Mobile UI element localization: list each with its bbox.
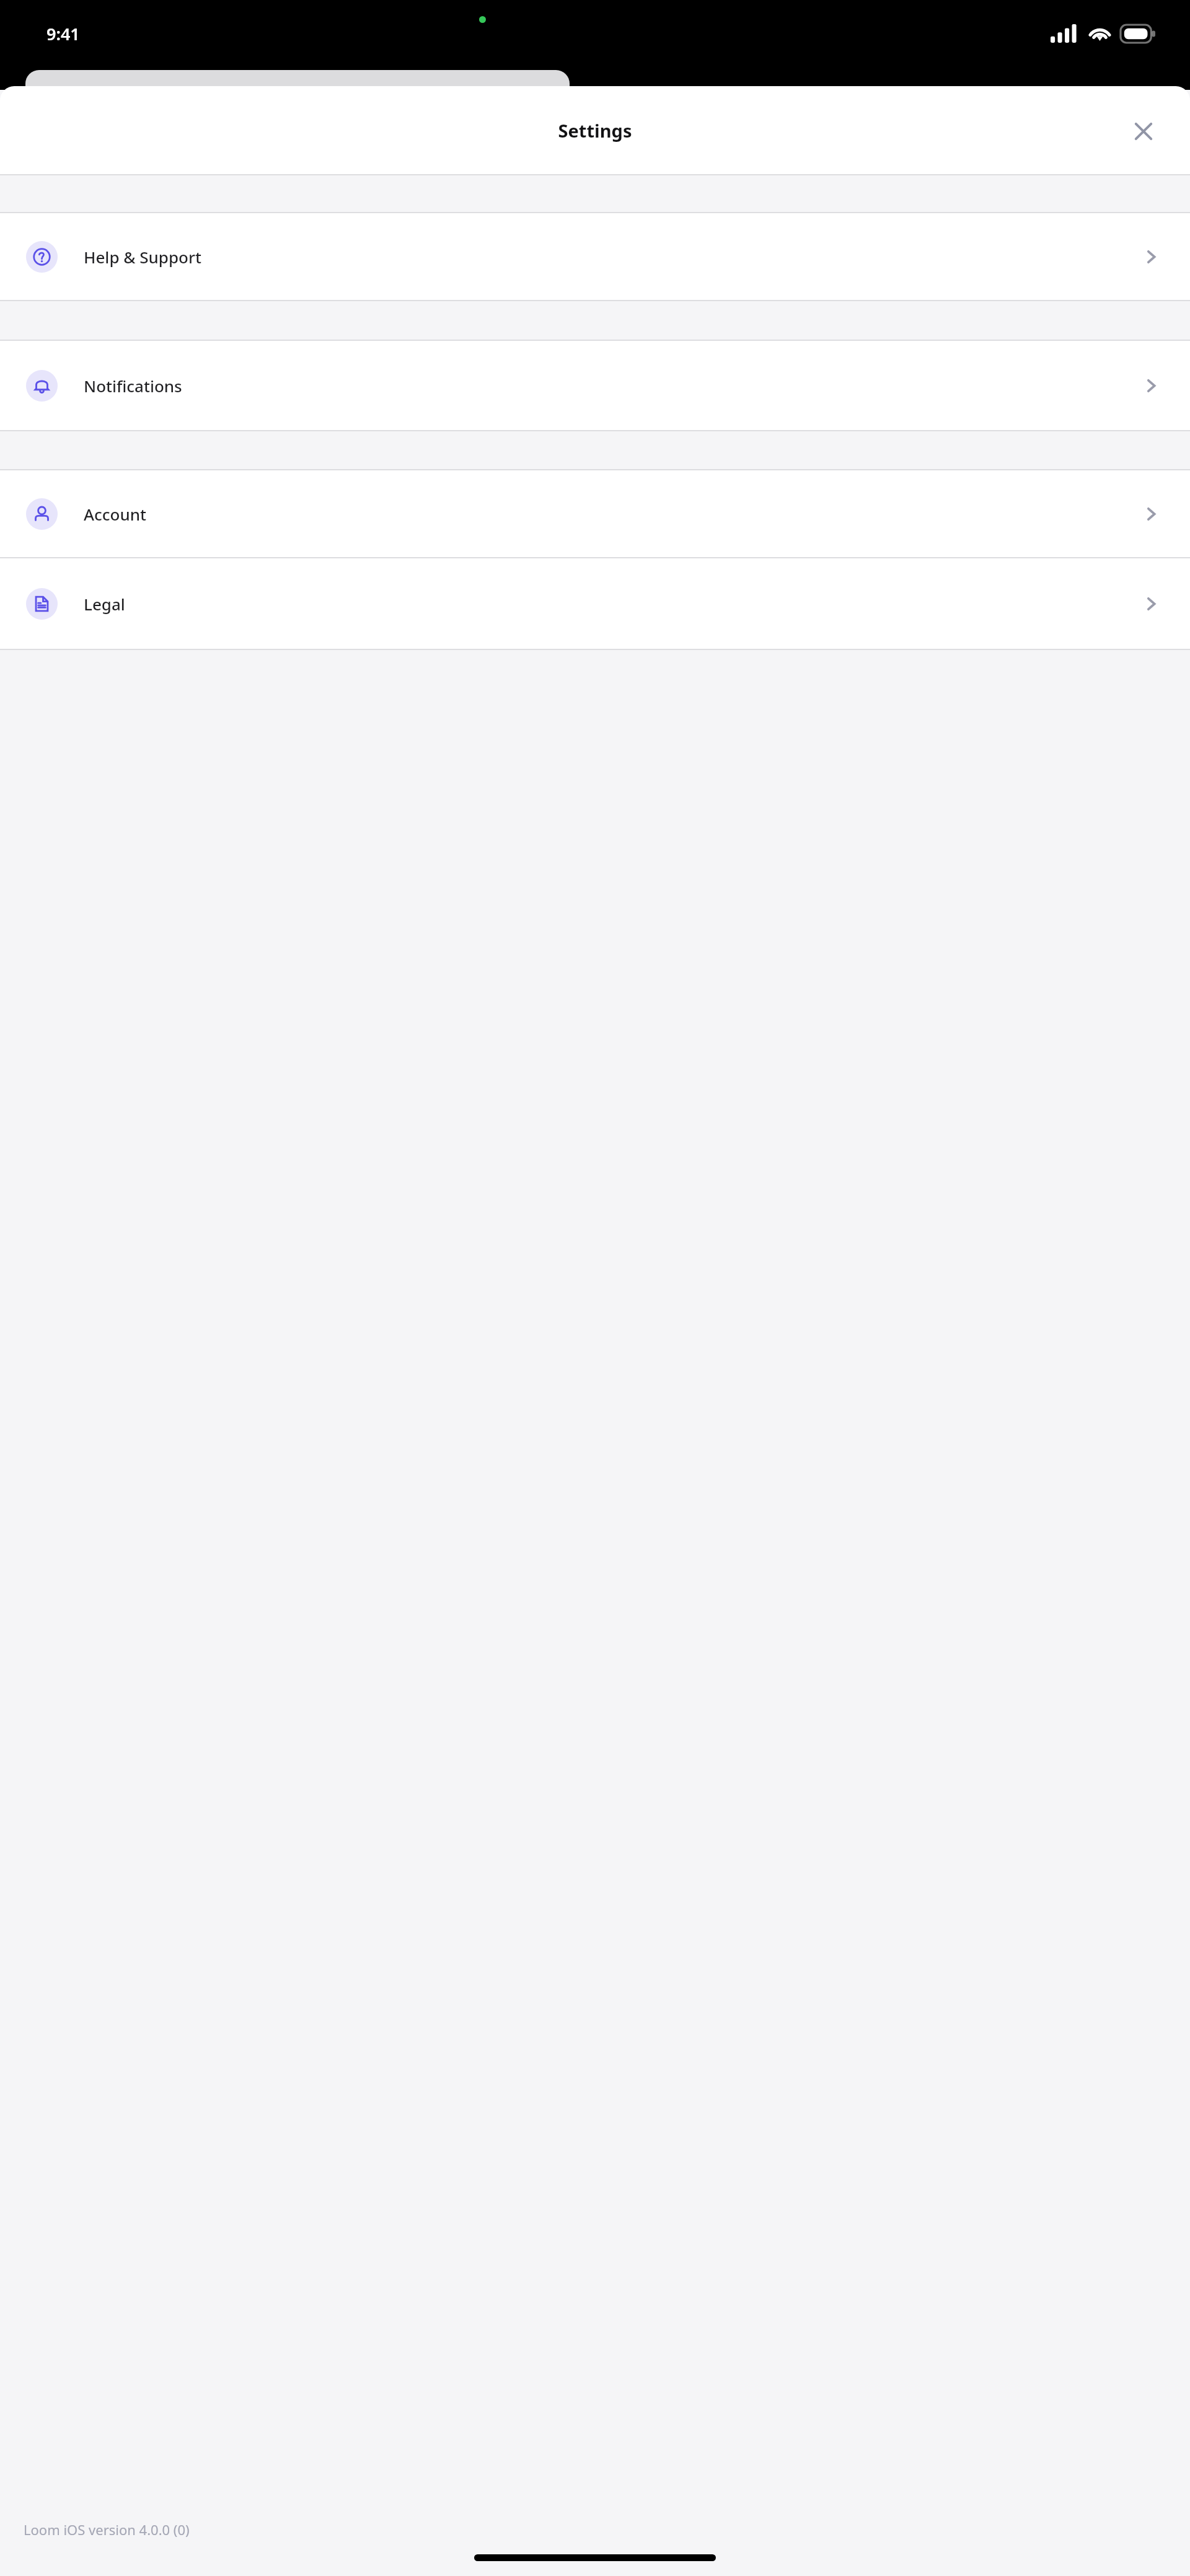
button[interactable]: Legal	[0, 558, 1190, 649]
staticText: Legal	[84, 593, 1142, 615]
staticText: 9:41	[46, 22, 80, 45]
button[interactable]: Help & Support	[0, 213, 1190, 300]
button[interactable]: Close	[1129, 117, 1158, 146]
button[interactable]: Notifications	[0, 341, 1190, 430]
staticText: Account	[84, 503, 1142, 525]
staticText: Loom iOS version 4.0.0 (0)	[24, 2520, 190, 2539]
staticText: Notifications	[84, 375, 1142, 397]
button[interactable]: Account	[0, 470, 1190, 557]
staticText: Settings	[0, 118, 1190, 143]
staticText: Help & Support	[84, 246, 1142, 268]
